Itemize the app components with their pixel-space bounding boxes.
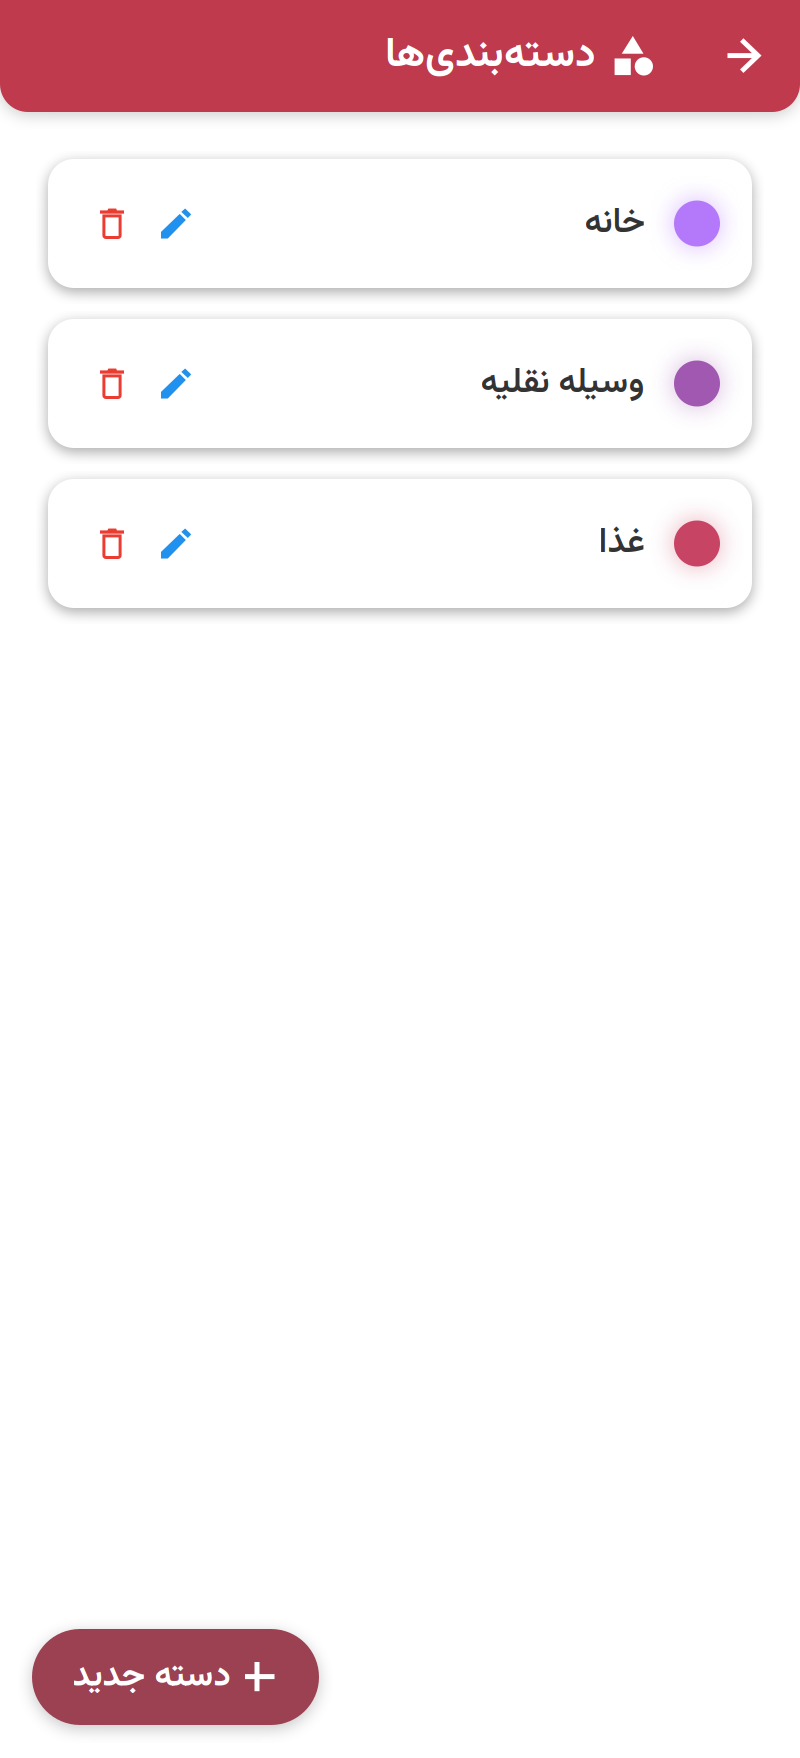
button[interactable]: Delete — [80, 345, 144, 421]
button[interactable]: خانه — [48, 159, 752, 288]
staticText: دسته جدید — [72, 1650, 230, 1704]
button[interactable]: Delete — [80, 185, 144, 261]
staticText: وسیله نقلیه — [480, 356, 644, 411]
button[interactable]: Edit — [144, 505, 208, 581]
button[interactable]: غذا — [48, 479, 752, 608]
button[interactable]: Edit — [144, 185, 208, 261]
staticText: دسته‌بندی‌ها — [385, 24, 596, 88]
staticText: غذا — [598, 516, 644, 571]
button[interactable]: Delete — [80, 505, 144, 581]
button[interactable]: Edit — [144, 345, 208, 421]
button[interactable]: وسیله نقلیه — [48, 319, 752, 448]
staticText: خانه — [584, 196, 644, 251]
button[interactable]: Back — [716, 28, 772, 84]
button[interactable]: دسته جدید — [32, 1629, 319, 1725]
